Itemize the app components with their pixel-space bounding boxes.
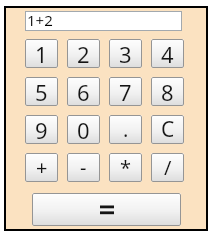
- staticText: 1: [35, 39, 48, 68]
- button[interactable]: 6: [67, 77, 100, 106]
- staticText: 3: [119, 39, 132, 68]
- button[interactable]: [32, 193, 181, 226]
- button[interactable]: 5: [25, 77, 58, 106]
- button[interactable]: 1: [25, 39, 58, 68]
- button[interactable]: +: [25, 153, 58, 182]
- button[interactable]: *: [109, 153, 142, 182]
- button[interactable]: 7: [109, 77, 142, 106]
- button[interactable]: 3: [109, 39, 142, 68]
- button[interactable]: -: [67, 153, 100, 182]
- staticText: *: [120, 154, 132, 181]
- staticText: .: [123, 116, 129, 143]
- staticText: C: [161, 115, 175, 144]
- button[interactable]: 0: [67, 115, 100, 144]
- staticText: 0: [77, 115, 90, 144]
- button[interactable]: C: [151, 115, 184, 144]
- staticText: 5: [35, 77, 48, 106]
- staticText: +: [36, 154, 48, 181]
- button[interactable]: 1+2: [25, 11, 182, 31]
- staticText: 4: [161, 39, 174, 68]
- staticText: -: [80, 154, 87, 181]
- button[interactable]: 8: [151, 77, 184, 106]
- staticText: 2: [77, 39, 90, 68]
- staticText: 7: [119, 77, 132, 106]
- staticText: 9: [35, 115, 48, 144]
- button[interactable]: 2: [67, 39, 100, 68]
- button[interactable]: /: [151, 153, 184, 182]
- staticText: 1+2: [27, 10, 53, 30]
- button[interactable]: 4: [151, 39, 184, 68]
- staticText: /: [164, 154, 172, 181]
- button[interactable]: .: [109, 115, 142, 144]
- button[interactable]: 9: [25, 115, 58, 144]
- staticText: 6: [77, 77, 90, 106]
- staticText: 8: [161, 77, 174, 106]
